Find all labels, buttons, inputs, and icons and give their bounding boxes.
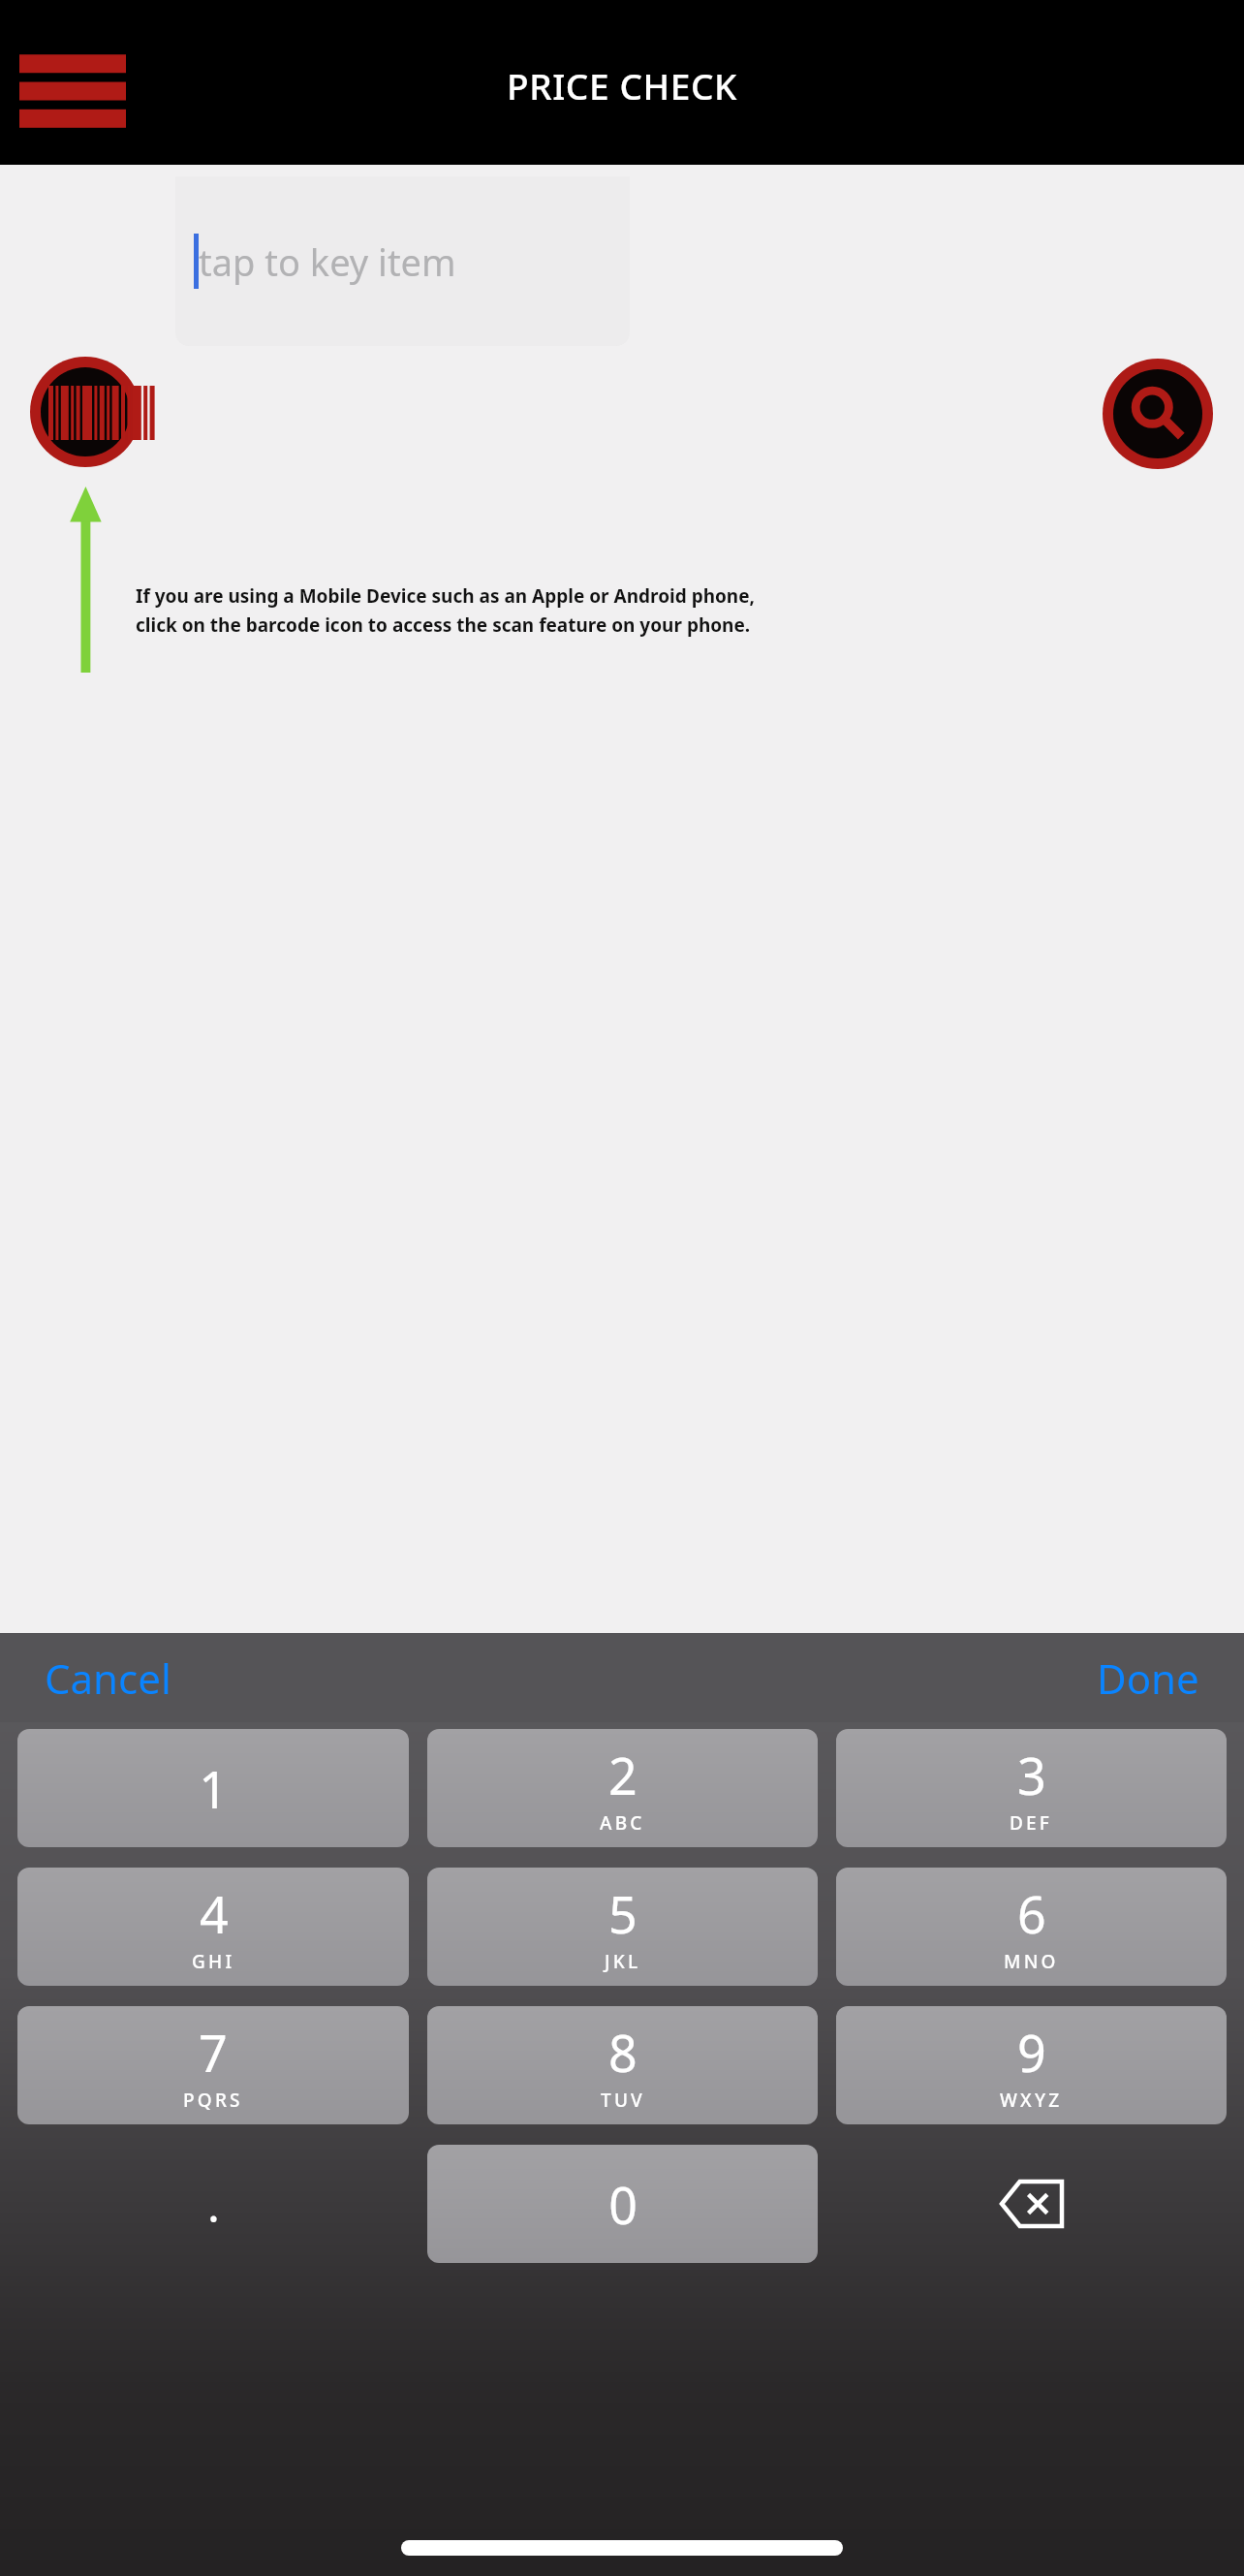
button[interactable]: 5 (427, 1868, 818, 1986)
staticText: PRICE CHECK (507, 61, 738, 110)
button[interactable]: 0 (427, 2145, 818, 2263)
staticText: 2 (608, 1741, 638, 1809)
button[interactable]: 3 (836, 1729, 1227, 1847)
button[interactable]: tap to key item (175, 176, 630, 346)
button[interactable]: 7 (17, 2006, 409, 2124)
button[interactable]: . (17, 2145, 409, 2263)
button[interactable]: 6 (836, 1868, 1227, 1986)
staticText: Cancel (45, 1650, 171, 1706)
staticText: 5 (608, 1879, 638, 1948)
button[interactable]: 9 (836, 2006, 1227, 2124)
button[interactable]: 1 (17, 1729, 409, 1847)
staticText: WXYZ (1000, 2088, 1063, 2113)
staticText: PQRS (183, 2088, 243, 2113)
button[interactable]: 4 (17, 1868, 409, 1986)
staticText: MNO (1004, 1949, 1059, 1974)
staticText: Done (1097, 1650, 1199, 1706)
staticText: 9 (1017, 2018, 1046, 2087)
button[interactable]: 2 (427, 1729, 818, 1847)
staticText: 0 (608, 2170, 638, 2239)
button[interactable]: Scan barcode (30, 357, 140, 467)
button[interactable]: Cancel (39, 1643, 177, 1713)
button[interactable]: Delete (836, 2145, 1227, 2263)
staticText: JKL (605, 1949, 641, 1974)
button[interactable]: Search (1103, 359, 1213, 469)
staticText: 8 (608, 2018, 638, 2087)
staticText: click on the barcode icon to access the … (136, 613, 751, 638)
staticText: GHI (192, 1949, 235, 1974)
staticText: 7 (199, 2018, 228, 2087)
button[interactable]: Menu (14, 29, 134, 136)
staticText: tap to key item (199, 236, 456, 287)
staticText: . (207, 2173, 220, 2236)
staticText: DEF (1010, 1810, 1053, 1836)
button[interactable]: Done (1091, 1643, 1205, 1713)
staticText: 6 (1017, 1879, 1046, 1948)
staticText: If you are using a Mobile Device such as… (136, 583, 755, 609)
staticText: 1 (199, 1754, 228, 1823)
button[interactable]: 8 (427, 2006, 818, 2124)
staticText: 3 (1017, 1741, 1046, 1809)
staticText: 4 (200, 1879, 229, 1948)
staticText: TUV (601, 2088, 645, 2113)
staticText: ABC (600, 1810, 645, 1836)
